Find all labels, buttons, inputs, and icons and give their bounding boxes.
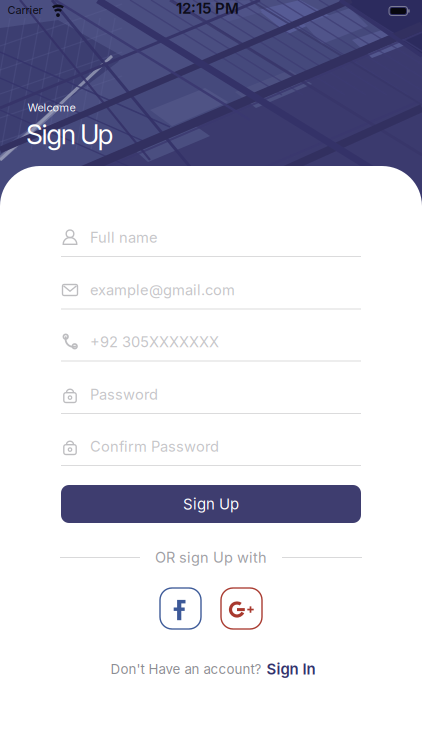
button[interactable]: Sign up with Google: [221, 588, 262, 629]
button[interactable]: Sign up with Facebook: [160, 588, 201, 629]
staticText: Password: [90, 385, 158, 403]
button[interactable]: Sign Up: [61, 485, 361, 523]
staticText: Sign Up: [26, 118, 114, 151]
staticText: example@gmail.com: [90, 281, 235, 299]
staticText: +92 305XXXXXXX: [90, 333, 219, 351]
staticText: OR sign Up with: [155, 549, 267, 566]
button[interactable]: Password: [61, 380, 361, 414]
staticText: Carrier: [7, 3, 42, 17]
staticText: Don't Have an account?: [110, 661, 261, 677]
button[interactable]: example@gmail.com: [61, 275, 361, 309]
button[interactable]: +92 305XXXXXXX: [61, 327, 361, 361]
staticText: Full name: [90, 228, 158, 246]
button[interactable]: Confirm Password: [61, 432, 361, 466]
staticText: Welcome: [27, 101, 75, 114]
staticText: Sign In: [266, 660, 315, 678]
staticText: Sign Up: [183, 495, 239, 513]
staticText: 12:15 PM: [176, 0, 239, 17]
button[interactable]: Full name: [61, 223, 361, 257]
button[interactable]: Sign In: [266, 660, 315, 678]
staticText: Confirm Password: [90, 437, 219, 455]
